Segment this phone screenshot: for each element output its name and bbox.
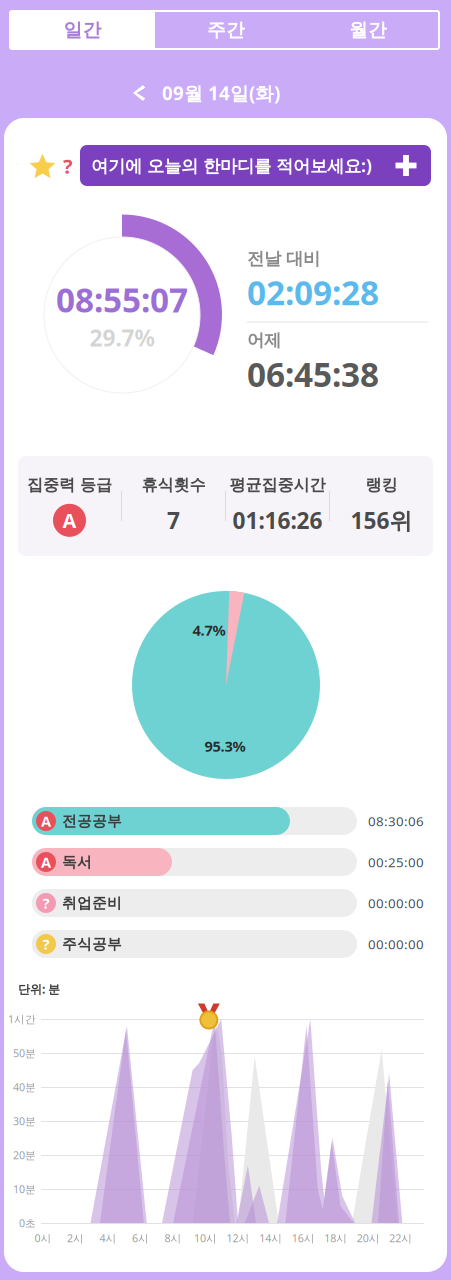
staticText: 20분 <box>13 1148 36 1162</box>
staticText: 01:16:26 <box>232 505 322 535</box>
staticText: 단위: 분 <box>18 981 60 997</box>
staticText: 주식공부 <box>62 935 122 953</box>
staticText: 22시 <box>389 1231 412 1245</box>
button[interactable]: 월간 <box>297 11 439 49</box>
staticText: 00:00:00 <box>368 935 424 953</box>
staticText: 02:09:28 <box>247 270 379 315</box>
staticText: 00:25:00 <box>368 853 424 871</box>
staticText: 95.3% <box>204 736 245 756</box>
staticText: 어제 <box>247 330 281 351</box>
staticText: 156위 <box>350 505 412 535</box>
staticText: 09월 14일(화) <box>162 81 280 105</box>
staticText: 4시 <box>99 1231 116 1245</box>
staticText: 4.7% <box>192 620 225 640</box>
staticText: 20시 <box>357 1231 380 1245</box>
button[interactable]: 일간 <box>10 11 155 49</box>
staticText: 0초 <box>19 1216 36 1230</box>
staticText: 집중력 등급 <box>27 475 112 495</box>
staticText: 7 <box>167 505 180 535</box>
staticText: A <box>62 507 76 534</box>
staticText: A <box>41 852 51 872</box>
staticText: 여기에 오늘의 한마디를 적어보세요:) <box>91 154 372 177</box>
staticText: 08:55:07 <box>56 277 188 322</box>
staticText: 8시 <box>165 1231 182 1245</box>
staticText: ? <box>42 934 49 954</box>
staticText: 30분 <box>13 1114 36 1128</box>
staticText: 일간 <box>63 18 101 41</box>
staticText: 휴식횟수 <box>141 475 205 495</box>
staticText: 전공공부 <box>62 812 122 830</box>
staticText: 06:45:38 <box>247 352 379 396</box>
button[interactable]: 주간 <box>155 11 297 49</box>
staticText: 0시 <box>34 1231 51 1245</box>
staticText: 6시 <box>132 1231 149 1245</box>
button[interactable]: A <box>32 807 432 835</box>
staticText: 독서 <box>62 853 92 871</box>
staticText: 월간 <box>349 18 387 41</box>
staticText: ? <box>63 153 73 179</box>
staticText: 1시간 <box>8 1012 36 1026</box>
staticText: 18시 <box>324 1231 347 1245</box>
staticText: A <box>41 811 51 831</box>
staticText: 40분 <box>13 1080 36 1094</box>
button[interactable]: A <box>32 848 432 876</box>
staticText: 주간 <box>207 18 245 41</box>
staticText: 12시 <box>227 1231 250 1245</box>
staticText: 14시 <box>259 1231 282 1245</box>
staticText: 10분 <box>13 1182 36 1196</box>
staticText: 전날 대비 <box>247 248 320 269</box>
button[interactable]: ? <box>32 889 432 917</box>
button[interactable]: 여기에 오늘의 한마디를 적어보세요:) <box>80 145 431 186</box>
staticText: 취업준비 <box>62 894 122 912</box>
staticText: 2시 <box>67 1231 84 1245</box>
staticText: 08:30:06 <box>368 812 424 830</box>
staticText: 00:00:00 <box>368 894 424 912</box>
staticText: ? <box>42 893 49 913</box>
staticText: 랭킹 <box>365 475 397 495</box>
button[interactable]: ? <box>32 930 432 958</box>
staticText: 50분 <box>13 1046 36 1060</box>
staticText: 29.7% <box>89 323 154 353</box>
button[interactable]: 이전 날짜 <box>124 78 150 108</box>
staticText: 평균집중시간 <box>229 475 325 495</box>
staticText: 16시 <box>292 1231 315 1245</box>
staticText: 10시 <box>194 1231 217 1245</box>
